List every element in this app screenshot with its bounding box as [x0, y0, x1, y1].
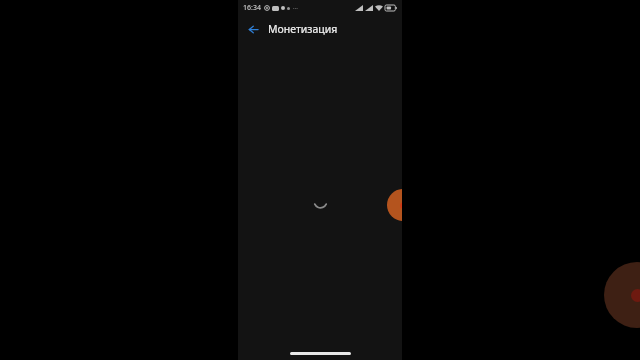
staticText: Монетизация	[268, 22, 338, 36]
staticText: 16:34	[243, 3, 261, 13]
staticText: ···	[293, 4, 298, 12]
button[interactable]: Back	[242, 18, 264, 40]
